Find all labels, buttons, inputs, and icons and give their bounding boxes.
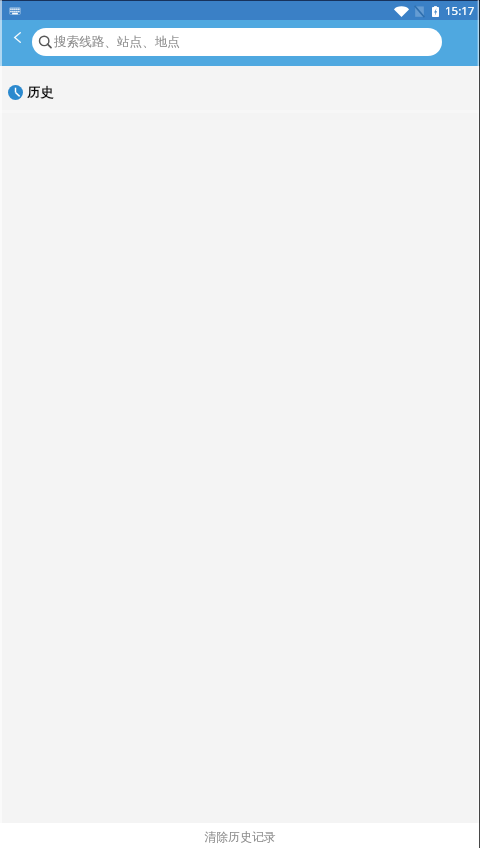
staticText: 清除历史记录	[204, 830, 276, 845]
staticText: 历史	[27, 84, 54, 101]
button[interactable]: Back	[2, 20, 33, 54]
button[interactable]: 历史	[0, 66, 480, 110]
button[interactable]: 清除历史记录	[0, 823, 480, 848]
button[interactable]: 搜索线路、站点、地点	[32, 28, 442, 56]
staticText: 15:17	[445, 3, 475, 19]
staticText: 搜索线路、站点、地点	[54, 34, 180, 50]
